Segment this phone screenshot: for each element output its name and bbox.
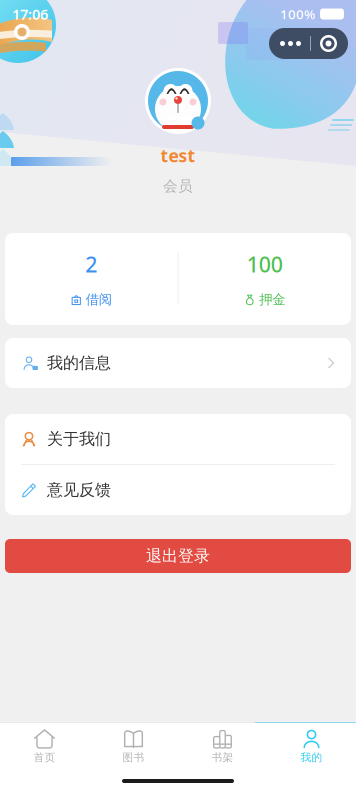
staticText: 我的信息 xyxy=(47,353,111,373)
staticText: 100% xyxy=(280,5,315,23)
staticText: 押金 xyxy=(259,291,285,308)
staticText: 17:06 xyxy=(12,4,48,24)
staticText: 图书 xyxy=(122,751,144,764)
button[interactable]: 关于我们 xyxy=(5,414,351,464)
button[interactable]: 退出登录 xyxy=(5,539,351,573)
staticText: 2 xyxy=(85,250,97,278)
staticText: 退出登录 xyxy=(146,546,210,566)
staticText: 书架 xyxy=(211,751,233,764)
button[interactable]: 100 xyxy=(178,233,351,325)
staticText: 100 xyxy=(247,250,283,278)
button[interactable]: 书架 xyxy=(178,723,267,770)
staticText: 意见反馈 xyxy=(47,480,111,500)
staticText: 我的 xyxy=(300,751,322,764)
staticText: 借阅 xyxy=(86,291,112,308)
staticText: 首页 xyxy=(33,751,55,764)
staticText: 关于我们 xyxy=(47,429,111,449)
button[interactable]: 意见反馈 xyxy=(5,465,351,515)
button[interactable]: 我的信息 xyxy=(5,338,351,388)
staticText: test xyxy=(160,144,195,167)
button[interactable]: 2 xyxy=(5,233,177,325)
button[interactable]: 图书 xyxy=(89,723,178,770)
button[interactable]: 我的 xyxy=(267,723,356,770)
button[interactable]: More xyxy=(269,28,348,59)
button[interactable]: 首页 xyxy=(0,723,89,770)
staticText: 会员 xyxy=(163,177,193,195)
